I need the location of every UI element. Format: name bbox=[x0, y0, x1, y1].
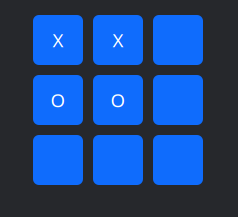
button[interactable]: Empty square 3 bbox=[153, 15, 203, 65]
staticText: X bbox=[52, 28, 63, 52]
staticText: O bbox=[110, 88, 125, 112]
button[interactable]: Empty square 6 bbox=[153, 75, 203, 125]
button[interactable]: X at square 2 bbox=[93, 15, 143, 65]
button[interactable]: O at square 5 bbox=[93, 75, 143, 125]
staticText: O bbox=[50, 88, 65, 112]
button[interactable]: X at square 1 bbox=[33, 15, 83, 65]
button[interactable]: Empty square 9 bbox=[153, 135, 203, 185]
button[interactable]: Empty square 7 bbox=[33, 135, 83, 185]
button[interactable]: Empty square 8 bbox=[93, 135, 143, 185]
staticText: X bbox=[112, 28, 123, 52]
button[interactable]: O at square 4 bbox=[33, 75, 83, 125]
